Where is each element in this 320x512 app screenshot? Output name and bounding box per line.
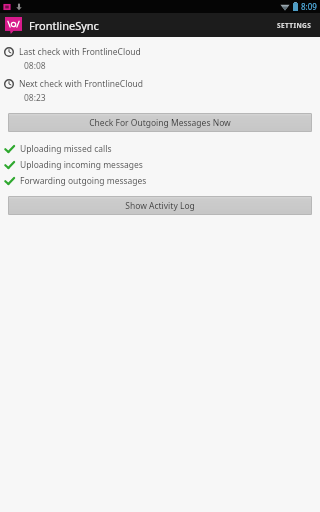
staticText: Next check with FrontlineCloud <box>19 78 144 90</box>
staticText: 8:09 <box>301 1 317 12</box>
staticText: 08:23 <box>24 92 46 104</box>
staticText: 08:08 <box>24 60 46 72</box>
staticText: Uploading missed calls <box>20 143 112 155</box>
button[interactable]: SETTINGS <box>269 13 320 37</box>
staticText: FrontlineSync <box>29 18 99 33</box>
staticText: Forwarding outgoing messages <box>20 175 147 187</box>
staticText: Last check with FrontlineCloud <box>19 46 141 58</box>
staticText: Uploading incoming messages <box>20 159 143 171</box>
button[interactable]: Show Activity Log <box>8 196 312 215</box>
button[interactable]: Check For Outgoing Messages Now <box>8 113 312 132</box>
staticText: Show Activity Log <box>125 200 195 212</box>
staticText: SETTINGS <box>277 21 312 30</box>
staticText: Check For Outgoing Messages Now <box>89 117 231 129</box>
